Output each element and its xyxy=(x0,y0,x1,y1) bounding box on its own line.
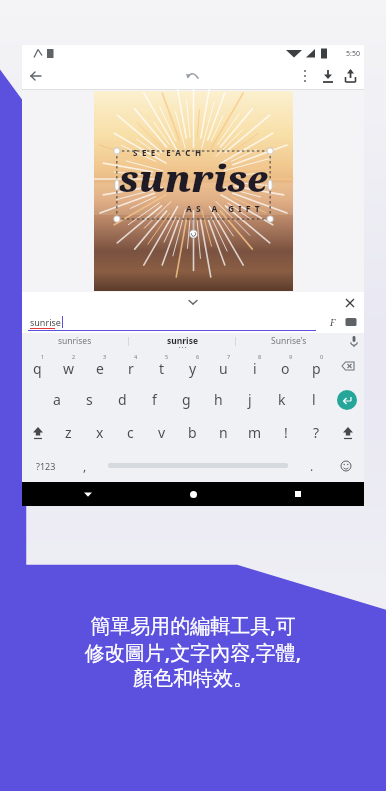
staticText: y xyxy=(189,359,197,378)
staticText: 8 xyxy=(258,353,262,360)
staticText: 3 xyxy=(103,353,107,360)
staticText: sunrise xyxy=(30,316,61,328)
staticText: p xyxy=(312,359,321,378)
button[interactable]: j xyxy=(234,383,266,416)
staticText: j xyxy=(248,390,252,409)
staticText: k xyxy=(278,390,286,409)
button[interactable]: Collapse xyxy=(183,292,203,312)
button[interactable]: sunrise xyxy=(129,333,235,349)
button[interactable]: ?123 xyxy=(22,449,69,482)
staticText: e xyxy=(96,359,104,378)
button[interactable]: Back xyxy=(22,62,50,90)
button[interactable]: 9 xyxy=(270,349,301,383)
staticText: 6 xyxy=(196,353,200,360)
button[interactable]: Sunrise's xyxy=(236,333,342,349)
button[interactable]: . xyxy=(296,449,327,482)
button[interactable]: sunrises xyxy=(22,333,128,349)
staticText: x xyxy=(96,423,104,442)
button[interactable]: 8 xyxy=(239,349,270,383)
button[interactable]: Recents xyxy=(287,483,309,505)
staticText: . xyxy=(310,458,314,474)
staticText: 顏色和特效。 xyxy=(24,666,362,691)
staticText: t xyxy=(159,359,165,378)
staticText: o xyxy=(281,359,290,378)
staticText: c xyxy=(127,423,134,442)
button[interactable]: Home xyxy=(182,483,204,505)
button[interactable]: z xyxy=(53,416,84,449)
button[interactable]: l xyxy=(298,383,330,416)
button[interactable]: 0 xyxy=(301,349,332,383)
button[interactable]: 7 xyxy=(208,349,239,383)
staticText: sunrise xyxy=(119,154,268,203)
button[interactable]: Download xyxy=(316,64,340,88)
button[interactable]: Share xyxy=(340,64,361,88)
button[interactable]: , xyxy=(69,449,100,482)
button[interactable]: Shift xyxy=(22,416,53,449)
staticText: 9 xyxy=(289,353,293,360)
staticText: ? xyxy=(313,423,320,442)
button[interactable]: n xyxy=(208,416,239,449)
staticText: F xyxy=(330,316,336,328)
button[interactable]: Space xyxy=(100,449,296,482)
staticText: 修改圖片,文字內容,字體, xyxy=(24,639,362,666)
staticText: v xyxy=(158,423,166,442)
button[interactable]: ? xyxy=(301,416,332,449)
staticText: 0 xyxy=(320,353,324,360)
button[interactable]: b xyxy=(177,416,208,449)
staticText: sunrise xyxy=(167,335,198,347)
staticText: z xyxy=(65,423,72,442)
button[interactable]: a xyxy=(40,383,73,416)
staticText: a xyxy=(53,390,61,409)
staticText: u xyxy=(219,359,228,378)
staticText: Sunrise's xyxy=(271,335,307,347)
staticText: s xyxy=(86,390,93,409)
button[interactable]: g xyxy=(170,383,202,416)
button[interactable]: k xyxy=(266,383,298,416)
button[interactable]: 4 xyxy=(115,349,146,383)
staticText: ?123 xyxy=(36,460,56,472)
button[interactable]: Back xyxy=(77,483,99,505)
staticText: h xyxy=(214,390,223,409)
button[interactable]: Enter xyxy=(330,383,364,416)
button[interactable]: 1 xyxy=(22,349,53,383)
button[interactable]: Font xyxy=(324,313,342,331)
staticText: 1 xyxy=(41,353,45,360)
staticText: A S A G I F T xyxy=(186,203,261,215)
staticText: r xyxy=(128,359,134,378)
button[interactable]: f xyxy=(138,383,170,416)
button[interactable]: h xyxy=(202,383,234,416)
staticText: 簡單易用的編輯工具,可 xyxy=(24,612,362,639)
staticText: d xyxy=(118,390,127,409)
button[interactable]: 2 xyxy=(53,349,84,383)
button[interactable]: 5 xyxy=(146,349,177,383)
button[interactable]: Backspace xyxy=(332,349,364,383)
staticText: S E E E A C H xyxy=(133,147,203,158)
staticText: i xyxy=(253,359,257,378)
staticText: m xyxy=(248,423,262,442)
button[interactable]: 3 xyxy=(84,349,115,383)
staticText: n xyxy=(219,423,228,442)
button[interactable]: Shift xyxy=(332,416,364,449)
staticText: g xyxy=(182,390,191,409)
button[interactable]: m xyxy=(239,416,270,449)
staticText: w xyxy=(63,359,75,378)
button[interactable]: More options xyxy=(294,65,316,87)
staticText: b xyxy=(188,423,197,442)
button[interactable]: c xyxy=(115,416,146,449)
button[interactable]: Undo xyxy=(179,62,207,90)
staticText: l xyxy=(312,390,316,409)
button[interactable]: v xyxy=(146,416,177,449)
staticText: 5 xyxy=(165,353,169,360)
button[interactable]: d xyxy=(106,383,138,416)
staticText: q xyxy=(33,359,42,378)
button[interactable]: Close xyxy=(340,293,360,313)
button[interactable]: x xyxy=(84,416,115,449)
staticText: 4 xyxy=(134,353,138,360)
button[interactable]: Voice input xyxy=(344,333,364,349)
button[interactable]: Keyboard xyxy=(342,313,360,331)
button[interactable]: 6 xyxy=(177,349,208,383)
staticText: f xyxy=(152,390,157,409)
button[interactable]: ! xyxy=(270,416,301,449)
button[interactable]: s xyxy=(73,383,106,416)
button[interactable]: Emoji xyxy=(327,449,364,482)
